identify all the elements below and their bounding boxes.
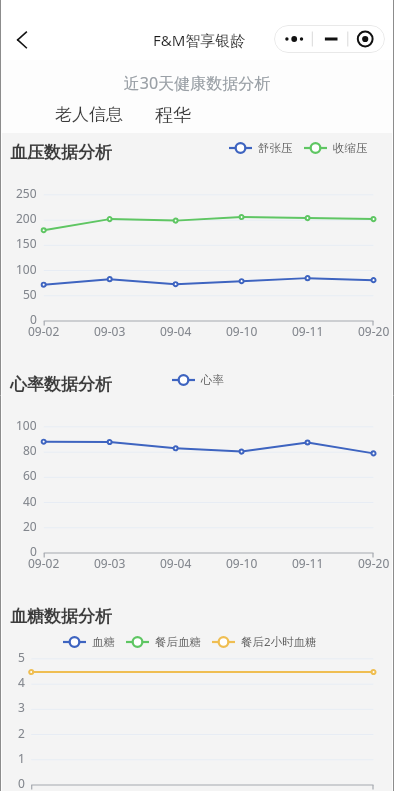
staticText: 程华 (155, 104, 191, 127)
staticText: 收缩压 (333, 141, 368, 155)
staticText: 60 (23, 467, 37, 483)
staticText: 血压数据分析 (10, 142, 112, 163)
staticText: 1 (18, 750, 25, 766)
staticText: 近30天健康数据分析 (0, 72, 394, 94)
staticText: 09-04 (160, 323, 192, 339)
staticText: 40 (23, 493, 37, 509)
button[interactable]: 心率 (171, 371, 224, 389)
staticText: 09-11 (292, 323, 324, 339)
button[interactable]: 老人信息 (55, 104, 123, 125)
button[interactable]: 血糖数据分析 (2, 597, 392, 791)
staticText: 心率 (201, 373, 224, 387)
staticText: 200 (16, 210, 37, 226)
staticText: 4 (18, 674, 25, 690)
staticText: 3 (18, 699, 25, 715)
button[interactable]: 程华 (155, 104, 191, 127)
staticText: 09-20 (358, 323, 390, 339)
staticText: 250 (16, 185, 37, 201)
staticText: 舒张压 (258, 141, 293, 155)
button[interactable]: 心率数据分析 (2, 365, 392, 597)
staticText: 20 (23, 518, 37, 534)
staticText: 餐后血糖 (155, 635, 201, 649)
staticText: 09-03 (94, 555, 126, 571)
staticText: 09-02 (28, 555, 60, 571)
staticText: 50 (23, 286, 37, 302)
staticText: 老人信息 (55, 104, 123, 125)
button[interactable]: Mini program menu (274, 25, 385, 53)
button[interactable]: 餐后血糖 (125, 633, 201, 651)
staticText: 0 (30, 311, 37, 327)
staticText: 09-10 (226, 323, 258, 339)
staticText: 5 (18, 649, 25, 665)
button[interactable]: 舒张压 (228, 139, 293, 157)
staticText: 09-04 (160, 555, 192, 571)
button[interactable]: 血糖 (62, 633, 115, 651)
staticText: 血糖数据分析 (10, 606, 112, 627)
staticText: 09-20 (358, 787, 390, 791)
button[interactable]: 血压数据分析 (2, 133, 392, 365)
staticText: 09-11 (292, 555, 324, 571)
button[interactable]: 餐后2小时血糖 (211, 633, 317, 651)
staticText: 0 (18, 775, 25, 791)
button[interactable]: Back (5, 22, 39, 56)
staticText: 09-02 (15, 787, 47, 791)
staticText: 100 (16, 417, 37, 433)
staticText: 心率数据分析 (10, 374, 112, 395)
staticText: 餐后2小时血糖 (241, 634, 317, 650)
staticText: 150 (16, 235, 37, 251)
staticText: 09-03 (94, 323, 126, 339)
staticText: 09-10 (226, 555, 258, 571)
staticText: 80 (23, 442, 37, 458)
button[interactable]: 收缩压 (303, 139, 368, 157)
staticText: 100 (16, 261, 37, 277)
staticText: 09-02 (28, 323, 60, 339)
staticText: 2 (18, 725, 25, 741)
staticText: 血糖 (92, 635, 115, 649)
staticText: 0 (30, 543, 37, 559)
staticText: 09-20 (358, 555, 390, 571)
staticText: F&M智享银龄 (153, 30, 246, 50)
